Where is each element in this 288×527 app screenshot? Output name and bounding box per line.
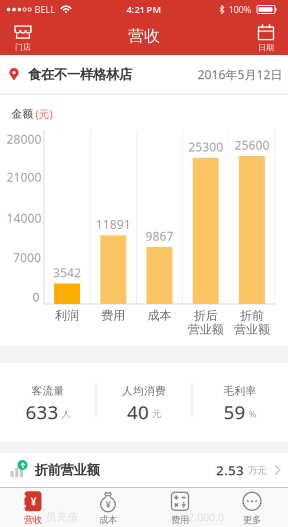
staticText: 14000 — [6, 210, 41, 226]
staticText: 59 — [223, 400, 245, 424]
staticText: 客流量 — [31, 384, 64, 397]
button[interactable]: 费用 — [147, 487, 213, 527]
staticText: 人 — [61, 408, 70, 420]
staticText: 营业额 — [188, 322, 224, 337]
staticText: 100% — [228, 3, 251, 16]
staticText: 2,000.0 — [188, 510, 224, 524]
staticText: 2016年5月12日 — [197, 66, 282, 82]
staticText: 折前营业额 — [34, 462, 99, 478]
staticText: 28000 — [6, 131, 41, 147]
button[interactable]: 食在不一样格林店 — [0, 55, 288, 94]
staticText: BELL — [34, 3, 55, 16]
staticText: % — [248, 408, 256, 420]
staticText: 9867 — [145, 228, 173, 244]
staticText: (元) — [35, 107, 52, 121]
staticText: 利润 — [55, 308, 79, 323]
staticText: 0 — [32, 289, 39, 305]
staticText: 成本 — [99, 514, 117, 526]
staticText: 21000 — [6, 169, 41, 185]
button[interactable]: 门店 — [1, 19, 45, 56]
staticText: 折前 — [240, 308, 264, 323]
staticText: 营收 — [24, 514, 42, 526]
staticText: 日期 — [258, 43, 274, 52]
staticText: 更多 — [243, 514, 261, 526]
staticText: 成本 — [147, 308, 171, 323]
staticText: 营业额 — [234, 322, 270, 337]
button[interactable]: 折前营业额 — [0, 453, 288, 487]
staticText: 营收 — [128, 26, 160, 46]
staticText: 折后 — [194, 308, 218, 323]
staticText: 633 — [25, 400, 58, 424]
staticText: 4:21 PM — [126, 3, 161, 16]
button[interactable]: ¥ — [0, 487, 66, 527]
staticText: 人均消费 — [122, 384, 166, 397]
staticText: 25300 — [188, 139, 223, 155]
staticText: 食在不一样格林店 — [28, 66, 132, 83]
staticText: 门店 — [15, 42, 31, 52]
button[interactable]: 日期 — [244, 19, 288, 56]
staticText: 元 — [152, 408, 161, 420]
staticText: 毛利率 — [223, 384, 256, 397]
staticText: 3542 — [53, 264, 81, 280]
staticText: ¥ — [30, 494, 36, 508]
staticText: 万元 — [248, 465, 266, 476]
button[interactable]: ¥ — [75, 487, 141, 527]
staticText: 费用 — [171, 514, 189, 526]
button[interactable]: 更多 — [219, 487, 285, 527]
staticText: 11891 — [96, 216, 131, 232]
staticText: 2.53 — [216, 461, 244, 479]
staticText: 金额 — [11, 107, 33, 120]
staticText: 25600 — [234, 137, 269, 153]
staticText: 7000 — [13, 249, 41, 265]
staticText: 40 — [127, 400, 149, 424]
staticText: 员充值 — [45, 510, 78, 523]
staticText: ¥ — [105, 498, 110, 511]
staticText: 费用 — [101, 308, 125, 323]
